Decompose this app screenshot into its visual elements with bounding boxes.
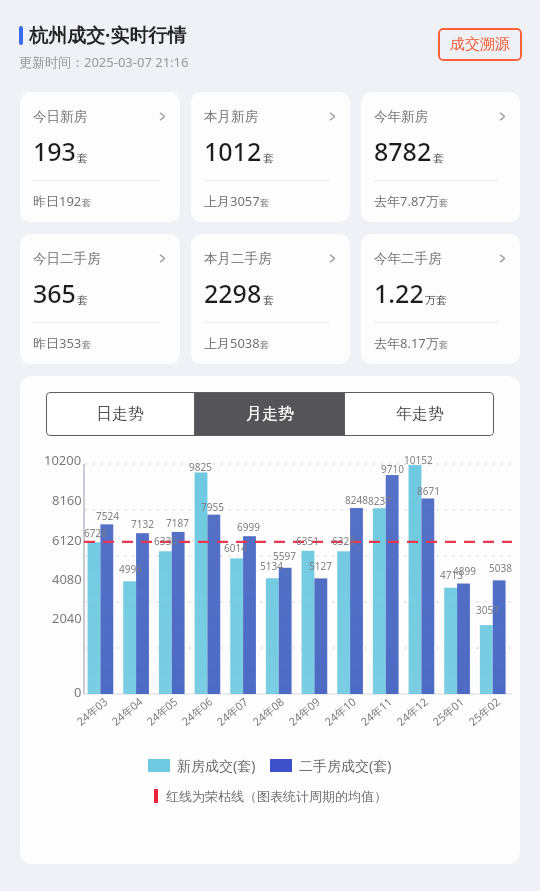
staticText: 10200 (44, 451, 82, 469)
staticText: 7955 (201, 500, 224, 514)
staticText: 365 (33, 276, 76, 310)
staticText: 24年08月 (249, 694, 287, 729)
button[interactable]: 今日新房 (20, 92, 180, 222)
staticText: 本月二手房 (204, 250, 272, 267)
staticText: 套 (260, 339, 270, 351)
button[interactable]: 成交溯源 (438, 28, 522, 61)
staticText: 1.22 (374, 276, 424, 310)
staticText: 4713 (440, 568, 463, 582)
staticText: 4996 (119, 562, 142, 576)
staticText: 8237 (368, 494, 391, 508)
staticText: 万套 (425, 293, 447, 307)
staticText: 套 (439, 197, 449, 209)
staticText: 成交溯源 (450, 35, 510, 54)
staticText: 24年03月 (73, 694, 110, 728)
staticText: 红线为荣枯线（图表统计周期的均值） (166, 788, 387, 804)
staticText: 4899 (453, 564, 476, 578)
staticText: 24年06月 (178, 694, 215, 728)
staticText: 二手房成交(套) (299, 756, 392, 775)
button[interactable]: 本月新房 (191, 92, 350, 222)
staticText: 套 (82, 339, 92, 351)
staticText: 套 (77, 151, 88, 165)
button[interactable]: 今年新房 (361, 92, 520, 222)
button[interactable]: 今年二手房 (361, 234, 520, 364)
staticText: 上月5038 (204, 334, 260, 352)
staticText: 1012 (204, 134, 262, 168)
staticText: 9825 (189, 460, 212, 474)
button[interactable]: 日走势 (46, 392, 194, 436)
button[interactable]: 月走势 (195, 392, 344, 436)
staticText: 0 (74, 683, 82, 701)
staticText: 6728 (84, 526, 107, 540)
staticText: 2040 (52, 609, 82, 627)
staticText: 6330 (154, 534, 177, 548)
staticText: 3057 (476, 603, 499, 617)
staticText: 7132 (131, 517, 154, 531)
staticText: 套 (263, 151, 274, 165)
staticText: 杭州成交·实时行情 (29, 22, 187, 48)
staticText: 年走势 (396, 404, 444, 424)
staticText: 8671 (417, 484, 440, 498)
staticText: 本月新房 (204, 108, 258, 125)
staticText: 套 (433, 151, 444, 165)
staticText: 4080 (52, 570, 82, 588)
staticText: 9710 (381, 462, 404, 476)
staticText: 5134 (260, 559, 283, 573)
button[interactable]: 本月二手房 (191, 234, 350, 364)
staticText: 25年01月 (429, 694, 467, 729)
staticText: 193 (33, 134, 76, 168)
staticText: 7187 (166, 516, 189, 530)
staticText: 5038 (489, 561, 512, 575)
staticText: 24年11月 (357, 694, 395, 729)
staticText: 日走势 (96, 404, 144, 424)
button[interactable]: 今日二手房 (20, 234, 180, 364)
staticText: 更新时间：2025-03-07 21:16 (19, 53, 189, 71)
staticText: 套 (82, 197, 92, 209)
staticText: 套 (263, 293, 274, 307)
staticText: 24年05月 (143, 694, 180, 728)
staticText: 24年07月 (213, 694, 251, 729)
staticText: 8248 (345, 493, 368, 507)
staticText: 8782 (374, 134, 432, 168)
staticText: 新房成交(套) (177, 756, 256, 775)
staticText: 套 (260, 197, 270, 209)
staticText: 今日二手房 (33, 250, 101, 267)
staticText: 套 (439, 339, 449, 351)
staticText: 10152 (404, 453, 433, 467)
staticText: 上月3057 (204, 192, 260, 210)
staticText: 去年8.17万 (374, 334, 439, 352)
staticText: 6351 (296, 534, 319, 548)
button[interactable]: 年走势 (345, 392, 494, 436)
staticText: 6120 (52, 531, 82, 549)
staticText: 7524 (96, 509, 119, 523)
staticText: 2298 (204, 276, 262, 310)
staticText: 24年09月 (285, 694, 323, 729)
staticText: 6999 (237, 520, 260, 534)
staticText: 6014 (224, 541, 247, 555)
staticText: 套 (77, 293, 88, 307)
staticText: 6328 (332, 534, 355, 548)
staticText: 今年新房 (374, 108, 428, 125)
staticText: 去年7.87万 (374, 192, 439, 210)
staticText: 5127 (309, 559, 332, 573)
staticText: 24年12月 (393, 694, 431, 729)
staticText: 昨日192 (33, 192, 82, 210)
staticText: 8160 (52, 491, 82, 509)
staticText: 5597 (273, 549, 296, 563)
staticText: 24年10月 (321, 694, 359, 729)
staticText: 今年二手房 (374, 250, 442, 267)
staticText: 24年04月 (108, 694, 145, 728)
staticText: 昨日353 (33, 334, 82, 352)
staticText: 月走势 (246, 404, 294, 424)
staticText: 今日新房 (33, 108, 87, 125)
staticText: 25年02月 (465, 694, 503, 729)
